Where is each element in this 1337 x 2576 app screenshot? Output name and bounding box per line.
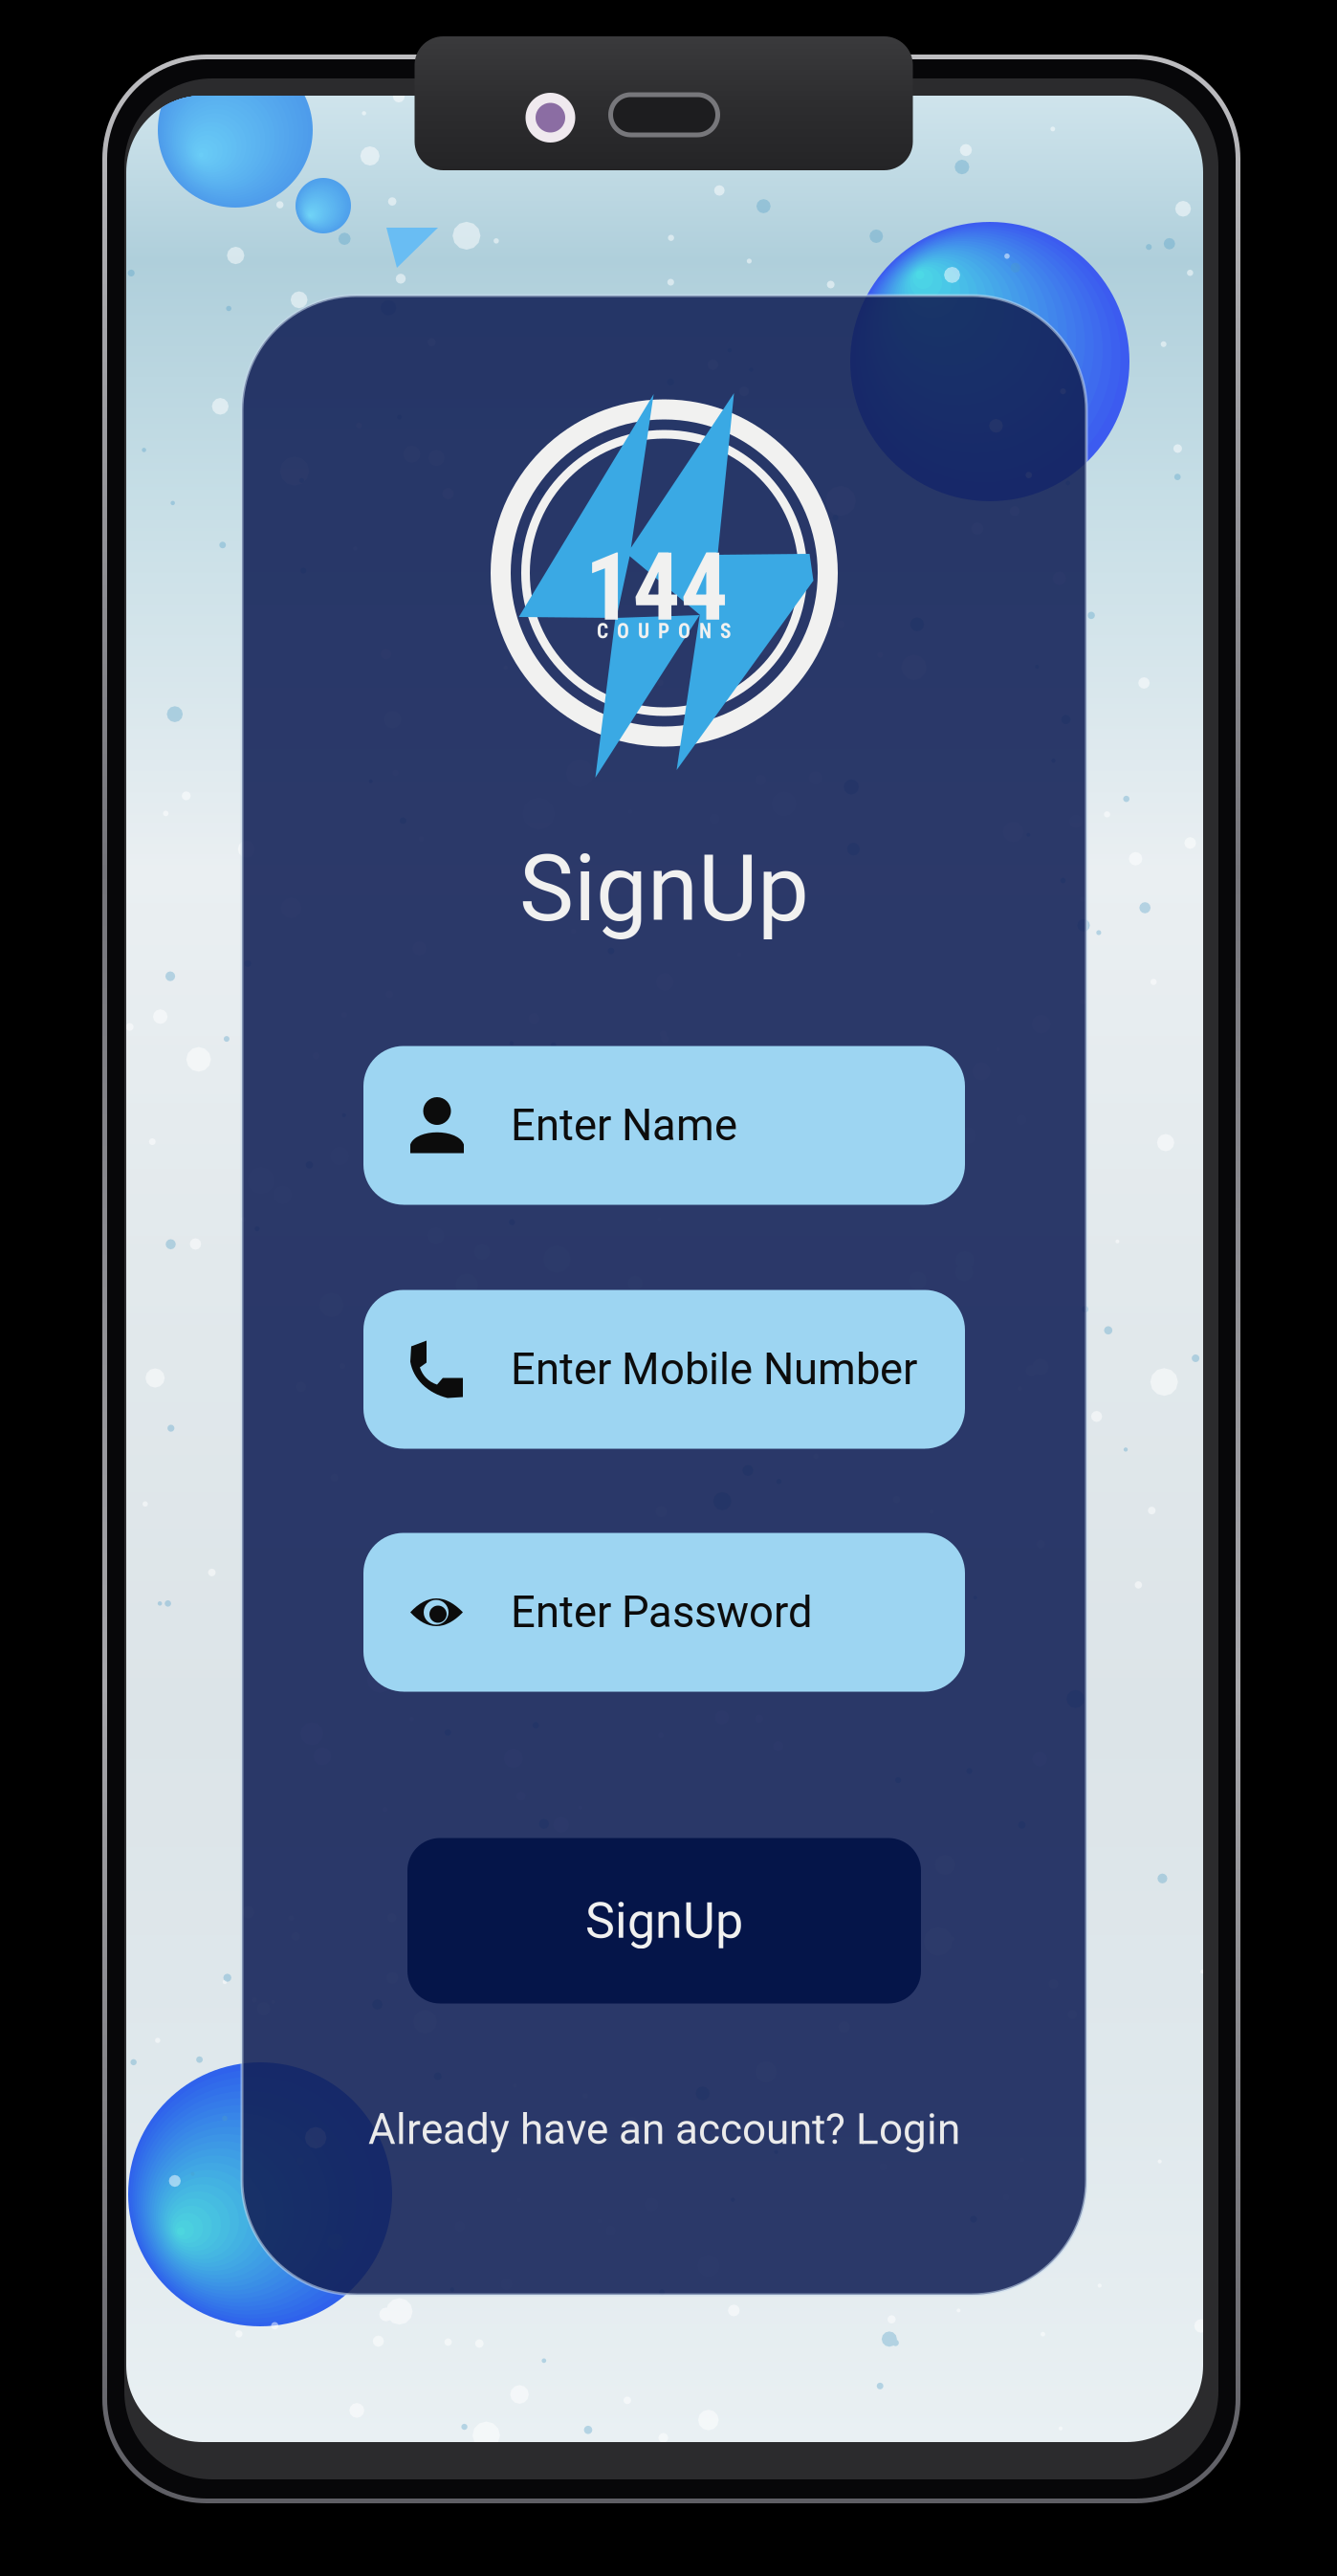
button[interactable]: Enter Password: [363, 1533, 965, 1692]
staticText: Enter Name: [511, 1100, 737, 1151]
button[interactable]: SignUp: [407, 1838, 921, 2004]
staticText: SignUp: [585, 1892, 743, 1950]
staticText: COUPONS: [597, 619, 732, 643]
button[interactable]: Already have an account? Login: [368, 2105, 960, 2154]
staticText: Already have an account? Login: [368, 2105, 960, 2154]
button[interactable]: Enter Name: [363, 1046, 965, 1205]
staticText: SignUp: [519, 835, 809, 943]
staticText: 144: [585, 532, 728, 643]
button[interactable]: Enter Mobile Number: [363, 1290, 965, 1449]
staticText: Enter Password: [511, 1587, 813, 1638]
staticText: Enter Mobile Number: [511, 1344, 917, 1395]
